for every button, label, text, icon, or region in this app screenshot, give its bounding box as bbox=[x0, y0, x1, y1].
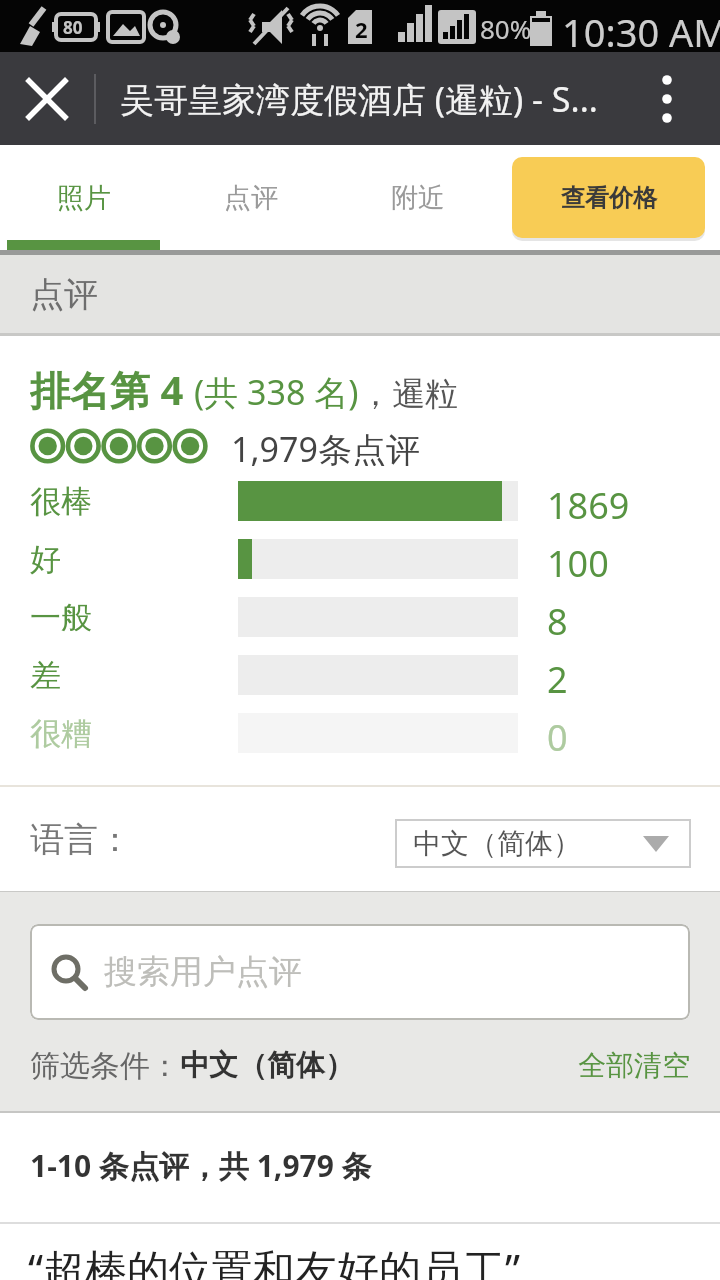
staticText: 1869 bbox=[547, 481, 630, 521]
staticText: 中文（简体） bbox=[180, 1047, 354, 1084]
staticText: 80 bbox=[63, 16, 83, 39]
staticText: 吴哥皇家湾度假酒店 (暹粒) - S... bbox=[120, 76, 614, 122]
staticText: 100 bbox=[547, 539, 609, 579]
button[interactable]: 附近 bbox=[334, 145, 501, 250]
staticText: 点评 bbox=[30, 273, 98, 316]
staticText: ，暹粒 bbox=[359, 373, 458, 415]
staticText: 1,979条点评 bbox=[231, 426, 420, 466]
staticText: 1-10 条点评，共 1,979 条 bbox=[30, 1145, 372, 1186]
button[interactable]: 搜索用户点评 bbox=[30, 924, 690, 1020]
staticText: 搜索用户点评 bbox=[104, 951, 302, 993]
staticText: 2 bbox=[547, 655, 568, 695]
staticText: 筛选条件： bbox=[30, 1047, 180, 1085]
button[interactable]: 查看价格 bbox=[512, 157, 705, 238]
staticText: 点评 bbox=[224, 181, 278, 215]
button[interactable]: 点评 bbox=[167, 145, 334, 250]
staticText: 一般 bbox=[30, 598, 92, 637]
staticText: 语言： bbox=[30, 818, 132, 861]
staticText: 中文（简体） bbox=[413, 826, 643, 861]
staticText: 差 bbox=[30, 656, 61, 695]
button[interactable] bbox=[614, 52, 720, 145]
staticText: 附近 bbox=[391, 181, 445, 215]
button[interactable] bbox=[0, 52, 94, 145]
staticText: 8 bbox=[547, 597, 568, 637]
button[interactable]: 全部清空 bbox=[578, 1048, 690, 1083]
staticText: 0 bbox=[547, 713, 568, 753]
staticText: 很糟 bbox=[30, 714, 92, 753]
staticText: 2 bbox=[355, 14, 368, 44]
staticText: 照片 bbox=[57, 181, 111, 215]
staticText: (共 338 名) bbox=[194, 369, 359, 415]
staticText: “超棒的位置和友好的员工” bbox=[28, 1240, 521, 1280]
staticText: 10:30 AM bbox=[562, 6, 720, 58]
button[interactable]: 中文（简体） bbox=[395, 819, 691, 868]
staticText: 好 bbox=[30, 540, 61, 579]
staticText: 排名第 4 bbox=[30, 362, 194, 414]
staticText: 很棒 bbox=[30, 482, 92, 521]
staticText: 80% bbox=[480, 11, 532, 46]
button[interactable]: 照片 bbox=[0, 145, 167, 250]
staticText: 查看价格 bbox=[561, 183, 657, 213]
